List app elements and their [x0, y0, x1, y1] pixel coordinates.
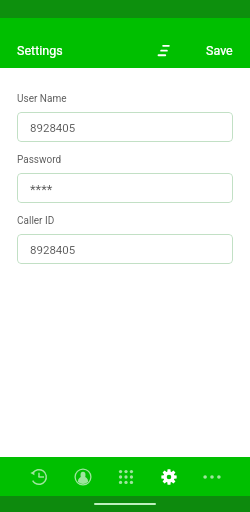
staticText: 8928405 [30, 243, 76, 256]
staticText: Save [206, 43, 233, 58]
button[interactable]: Settings [147, 457, 190, 496]
button[interactable]: 8928405 [17, 234, 233, 264]
button[interactable]: Dialpad [104, 457, 147, 496]
staticText: Caller ID [17, 215, 55, 227]
button[interactable]: Recents [17, 457, 61, 496]
button[interactable]: Save [189, 32, 250, 68]
staticText: User Name [17, 93, 67, 105]
staticText: Settings [17, 43, 63, 58]
button[interactable]: **** [17, 173, 233, 203]
button[interactable]: 8928405 [17, 112, 233, 142]
button[interactable]: Contacts [61, 457, 104, 496]
staticText: **** [30, 182, 53, 197]
staticText: Password [17, 154, 62, 166]
staticText: 8928405 [30, 121, 76, 134]
button[interactable]: More [190, 457, 233, 496]
button[interactable]: Sort [148, 34, 180, 66]
